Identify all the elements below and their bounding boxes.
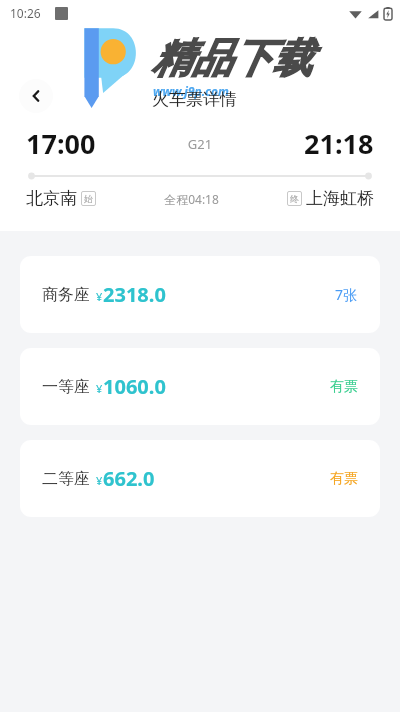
- staticText: www.j9p.com: [153, 83, 229, 99]
- staticText: ¥: [96, 473, 103, 488]
- staticText: 北京南: [26, 188, 77, 209]
- staticText: 1060.0: [103, 373, 166, 400]
- staticText: 商务座: [42, 285, 90, 305]
- staticText: 10:26: [10, 5, 41, 21]
- staticText: 662.0: [103, 465, 155, 492]
- staticText: 7张: [335, 285, 358, 304]
- button[interactable]: 商务座: [20, 256, 380, 333]
- staticText: 上海虹桥: [306, 188, 374, 209]
- staticText: 始: [84, 193, 93, 204]
- staticText: 17:00: [26, 125, 96, 162]
- staticText: 一等座: [42, 377, 90, 397]
- staticText: 21:18: [304, 125, 374, 162]
- staticText: 有票: [330, 378, 358, 396]
- staticText: 有票: [330, 470, 358, 488]
- button[interactable]: 二等座: [20, 440, 380, 517]
- staticText: 二等座: [42, 469, 90, 489]
- staticText: 2318.0: [103, 281, 166, 308]
- button[interactable]: Back: [19, 79, 53, 113]
- staticText: 终: [290, 193, 299, 204]
- staticText: G21: [96, 135, 304, 153]
- staticText: 精品下载: [152, 33, 312, 83]
- staticText: ¥: [96, 289, 103, 304]
- staticText: ¥: [96, 381, 103, 396]
- button[interactable]: 一等座: [20, 348, 380, 425]
- staticText: 火车票详情: [152, 89, 237, 110]
- staticText: 全程04:18: [96, 191, 287, 207]
